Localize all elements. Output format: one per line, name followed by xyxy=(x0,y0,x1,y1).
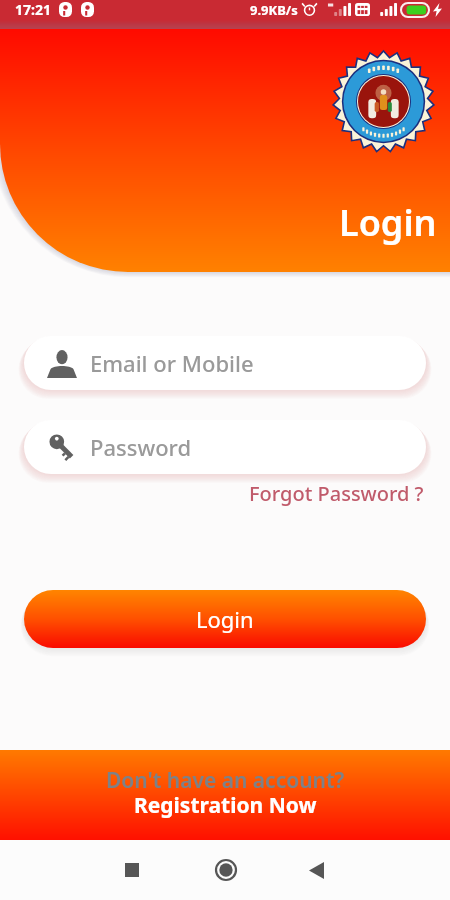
staticText: Password xyxy=(90,432,192,462)
staticText: 17:21 xyxy=(15,0,51,19)
button[interactable]: Forgot Password ? xyxy=(245,478,428,509)
staticText: Email or Mobile xyxy=(90,348,254,378)
staticText: Login xyxy=(339,198,437,247)
staticText: Registration Now xyxy=(134,791,317,820)
staticText: Don't have an account? xyxy=(106,766,345,795)
staticText: Forgot Password ? xyxy=(249,480,424,507)
button[interactable]: Login xyxy=(24,590,426,648)
button[interactable]: Email or Mobile xyxy=(24,336,426,390)
button[interactable]: Home xyxy=(179,840,273,900)
staticText: Login xyxy=(196,604,254,634)
button[interactable]: Back xyxy=(273,840,359,900)
button[interactable]: Password xyxy=(24,420,426,474)
button[interactable]: Recent apps xyxy=(85,840,179,900)
button[interactable]: Don't have an account? xyxy=(0,750,450,840)
staticText: 9.9KB/s xyxy=(250,1,298,19)
